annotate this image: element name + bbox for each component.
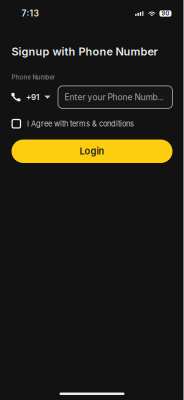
button[interactable]: Login bbox=[11, 139, 172, 163]
staticText: Login bbox=[79, 146, 104, 157]
button[interactable]: I Agree with terms & conditions bbox=[0, 119, 184, 128]
button[interactable]: +91 bbox=[11, 85, 50, 109]
button[interactable]: Enter your Phone Numb... bbox=[58, 86, 172, 108]
staticText: Signup with Phone Number bbox=[11, 45, 157, 58]
staticText: Phone Number bbox=[11, 74, 54, 81]
staticText: +91 bbox=[26, 92, 39, 102]
staticText: Enter your Phone Numb... bbox=[64, 92, 163, 102]
staticText: I Agree with terms & conditions bbox=[27, 119, 134, 128]
staticText: 7:13 bbox=[21, 8, 38, 19]
staticText: 90 bbox=[161, 10, 169, 17]
